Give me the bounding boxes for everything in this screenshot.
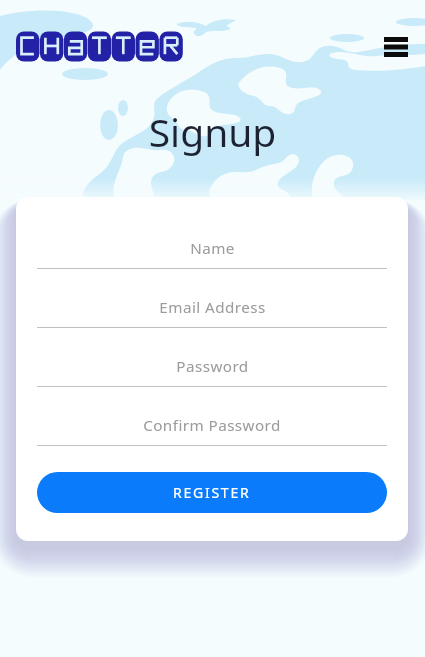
staticText: Confirm Password: [143, 415, 281, 436]
button[interactable]: REGISTER: [37, 472, 387, 513]
button[interactable]: Menu: [384, 37, 408, 57]
staticText: REGISTER: [173, 483, 251, 502]
staticText: Name: [190, 238, 235, 259]
button[interactable]: [16, 31, 183, 62]
staticText: Password: [176, 356, 249, 377]
staticText: Signup: [0, 105, 425, 158]
staticText: Email Address: [159, 297, 266, 318]
